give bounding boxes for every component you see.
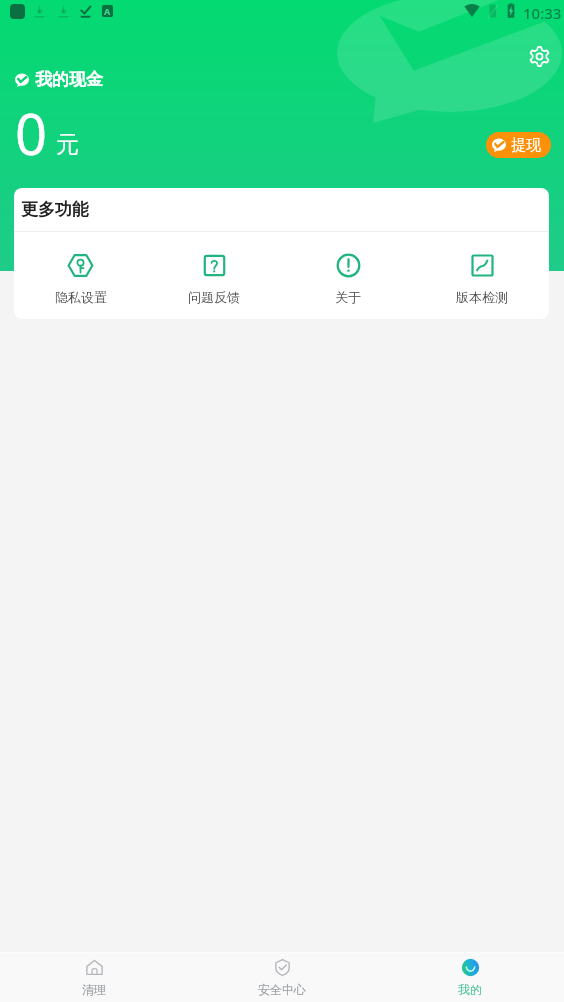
staticText: 更多功能: [21, 199, 89, 220]
staticText: 版本检测: [456, 289, 508, 305]
button[interactable]: 安全中心: [188, 953, 376, 1002]
staticText: 0: [15, 95, 48, 171]
staticText: 提现: [511, 136, 541, 155]
staticText: 我的现金: [35, 69, 103, 90]
staticText: A: [104, 5, 111, 17]
button[interactable]: 隐私设置: [14, 232, 147, 319]
button[interactable]: 清理: [0, 953, 188, 1002]
button[interactable]: Settings: [523, 40, 555, 72]
staticText: 安全中心: [258, 982, 306, 997]
button[interactable]: 版本检测: [415, 232, 549, 319]
staticText: 元: [56, 130, 79, 159]
staticText: 我的: [458, 982, 482, 997]
staticText: 清理: [82, 982, 106, 997]
staticText: 10:33: [523, 3, 562, 23]
button[interactable]: 我的现金: [13, 66, 105, 93]
staticText: 隐私设置: [55, 289, 107, 305]
button[interactable]: 问题反馈: [147, 232, 281, 319]
staticText: 问题反馈: [188, 289, 240, 305]
button[interactable]: 我的: [376, 953, 564, 1002]
button[interactable]: 提现: [486, 132, 551, 158]
button[interactable]: 关于: [281, 232, 415, 319]
staticText: 关于: [335, 289, 361, 305]
